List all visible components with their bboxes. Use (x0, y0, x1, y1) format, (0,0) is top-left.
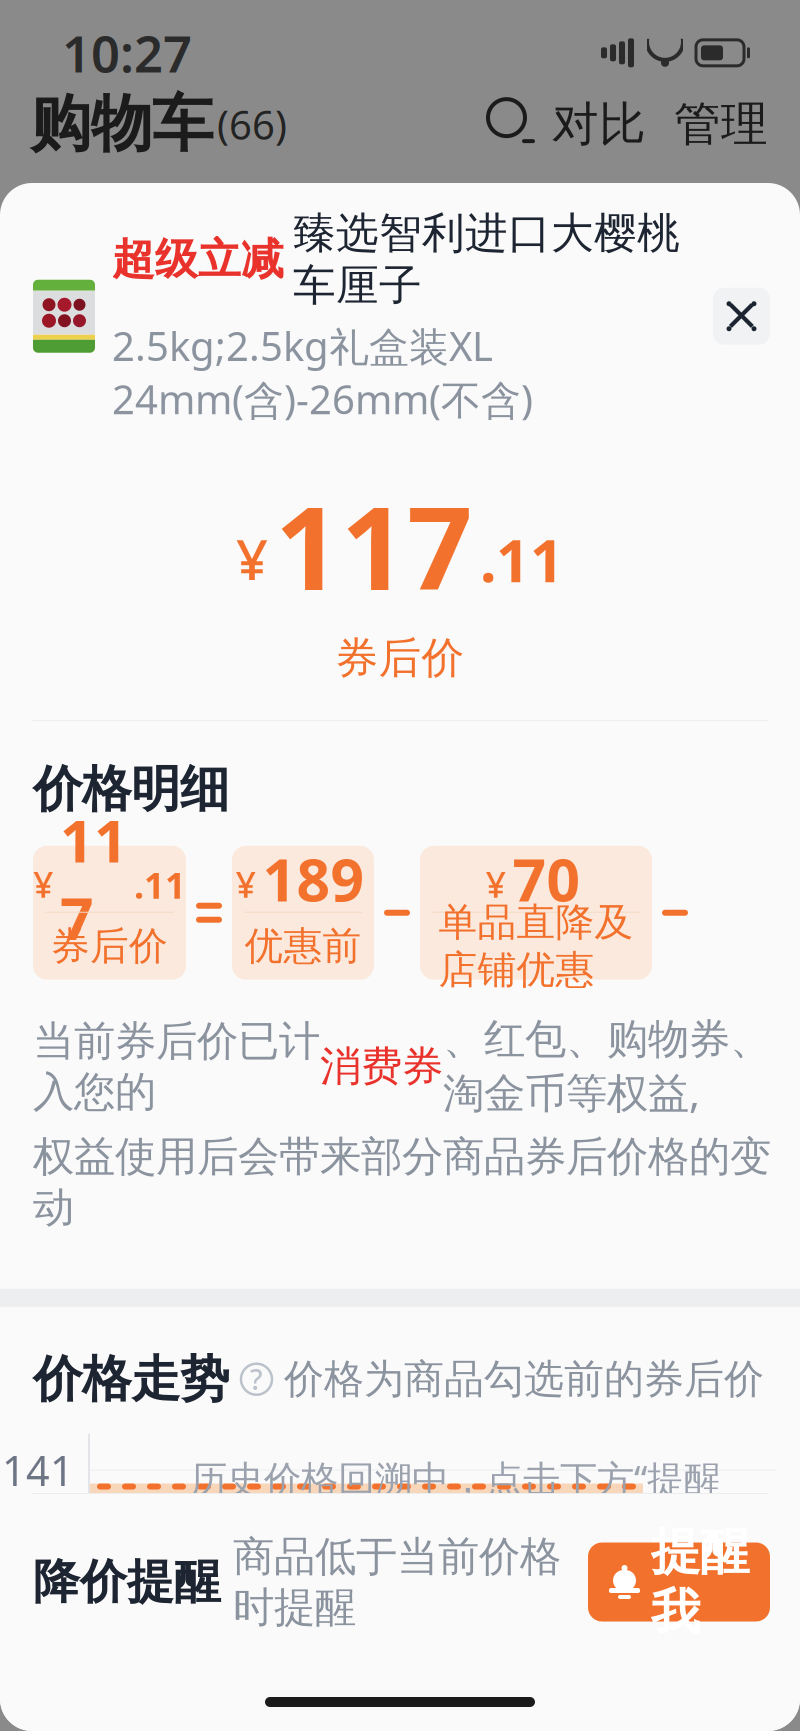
staticText: ✕ (723, 292, 759, 340)
staticText: 当前券后价已计入您的 (33, 1016, 320, 1117)
staticText: ¥ (235, 860, 256, 908)
staticText: 47 (14, 1589, 62, 1643)
staticText: ? (250, 1361, 263, 1398)
staticText: 消费券 (320, 1041, 443, 1092)
staticText: .11 (134, 861, 186, 909)
staticText: 、红包、购物券、淘金币等权益, (443, 1014, 771, 1119)
button[interactable]: 提醒我 (588, 1542, 770, 1621)
staticText: 超级立减 (112, 233, 284, 286)
staticText: 189 (262, 840, 364, 918)
staticText: 70 (512, 840, 580, 918)
staticText: ¥ (485, 860, 506, 908)
button[interactable]: 对比 (538, 95, 660, 153)
staticText: 购物车 (30, 86, 213, 162)
staticText: .11 (480, 521, 564, 598)
staticText: 商品低于当前价格时提醒 (233, 1531, 561, 1633)
staticText: 单品直降及店铺优惠 (438, 899, 633, 994)
staticText: 价格明细 (33, 759, 229, 820)
staticText: (66) (217, 98, 287, 151)
staticText: 提醒我 (651, 1521, 749, 1643)
staticText: 优惠前 (244, 922, 361, 970)
staticText: 券后价 (51, 922, 168, 970)
button[interactable]: 管理 (660, 95, 768, 153)
button[interactable]: 价格走势说明 (241, 1364, 272, 1395)
staticText: ¥ (33, 860, 54, 908)
staticText: 臻选智利进口大樱桃车厘子 (293, 207, 680, 312)
staticText: 历史价格回溯中，点击下方“提醒我”获取降价提醒 (190, 1453, 721, 1553)
button[interactable]: 关闭 (713, 288, 770, 345)
staticText: 管理 (674, 95, 768, 153)
staticText: 94 (14, 1516, 62, 1570)
staticText: 2.5kg;2.5kg礼盒装XL 24mm(含)-26mm(不含) (112, 319, 533, 425)
button[interactable]: 搜索 (488, 99, 538, 149)
staticText: 权益使用后会带来部分商品券后价格的变动 (33, 1131, 771, 1233)
staticText: ¥ (236, 521, 268, 596)
staticText: 券后价 (335, 632, 464, 684)
staticText: 117 (60, 801, 128, 957)
staticText: 10:27 (62, 19, 192, 86)
staticText: 141 (2, 1443, 74, 1497)
staticText: 117 (275, 469, 473, 622)
staticText: 价格为商品勾选前的券后价 (284, 1355, 764, 1404)
staticText: 对比 (552, 95, 646, 153)
staticText: 价格走势 (33, 1349, 229, 1409)
staticText: 降价提醒 (33, 1553, 221, 1611)
